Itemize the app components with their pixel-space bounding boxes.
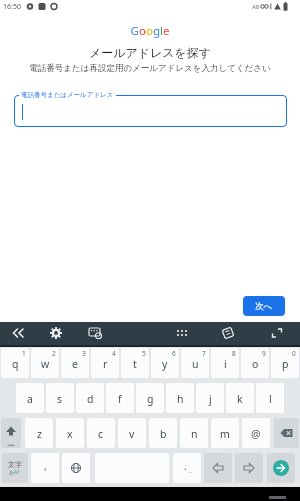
- staticText: j: [209, 392, 212, 406]
- staticText: d: [87, 392, 94, 406]
- staticText: 5: [142, 349, 146, 358]
- button[interactable]: 次へ: [243, 296, 285, 316]
- staticText: b: [160, 427, 167, 441]
- button[interactable]: h: [166, 383, 194, 413]
- button[interactable]: r: [91, 348, 119, 378]
- button[interactable]: @: [242, 418, 270, 448]
- staticText: q: [12, 357, 19, 371]
- button[interactable]: x: [56, 418, 84, 448]
- staticText: 4: [112, 349, 116, 358]
- button[interactable]: f: [106, 383, 134, 413]
- button[interactable]: a: [16, 383, 44, 413]
- staticText: 9: [262, 349, 266, 358]
- button[interactable]: i: [211, 348, 239, 378]
- button[interactable]: ,: [31, 453, 59, 483]
- button[interactable]: [235, 453, 263, 483]
- staticText: メールアドレスを探す: [0, 45, 300, 60]
- button[interactable]: [267, 453, 295, 483]
- button[interactable]: g: [136, 383, 164, 413]
- staticText: 2: [52, 349, 56, 358]
- button[interactable]: e: [61, 348, 89, 378]
- staticText: m: [220, 427, 230, 441]
- staticText: a: [27, 392, 33, 406]
- staticText: @: [251, 427, 261, 441]
- staticText: p: [282, 357, 289, 371]
- staticText: u: [192, 357, 199, 371]
- button[interactable]: [14, 95, 287, 127]
- button[interactable]: l: [256, 383, 284, 413]
- button[interactable]: j: [196, 383, 224, 413]
- staticText: x: [67, 427, 73, 441]
- staticText: i: [224, 357, 227, 371]
- button[interactable]: v: [118, 418, 146, 448]
- button[interactable]: [204, 453, 232, 483]
- staticText: 電話番号またはメールアドレス: [21, 91, 114, 99]
- button[interactable]: d: [76, 383, 104, 413]
- button[interactable]: c: [87, 418, 115, 448]
- button[interactable]: y: [151, 348, 179, 378]
- staticText: 0: [292, 349, 296, 358]
- staticText: f: [118, 392, 122, 406]
- staticText: e: [72, 357, 78, 371]
- staticText: _: [189, 466, 192, 474]
- staticText: ,: [44, 459, 47, 473]
- staticText: 6: [172, 349, 176, 358]
- button[interactable]: n: [180, 418, 208, 448]
- staticText: y: [162, 357, 168, 371]
- staticText: o: [252, 357, 259, 371]
- staticText: あA1: [9, 469, 21, 476]
- staticText: c: [98, 427, 104, 441]
- button[interactable]: [1, 418, 21, 448]
- button[interactable]: o: [241, 348, 269, 378]
- button[interactable]: [274, 418, 299, 448]
- staticText: 文字: [8, 460, 22, 469]
- staticText: n: [191, 427, 198, 441]
- staticText: A8: [252, 3, 260, 11]
- button[interactable]: t: [121, 348, 149, 378]
- staticText: r: [103, 357, 108, 371]
- staticText: s: [57, 392, 63, 406]
- staticText: Google: [0, 23, 300, 39]
- button[interactable]: m: [211, 418, 239, 448]
- staticText: 1: [22, 349, 26, 358]
- button[interactable]: k: [226, 383, 254, 413]
- staticText: 16:50: [3, 2, 21, 12]
- staticText: t: [133, 357, 137, 371]
- staticText: 3: [82, 349, 86, 358]
- button[interactable]: p: [271, 348, 299, 378]
- button[interactable]: [62, 453, 90, 483]
- button[interactable]: .: [173, 453, 201, 483]
- button[interactable]: s: [46, 383, 74, 413]
- staticText: 7: [202, 349, 206, 358]
- button[interactable]: u: [181, 348, 209, 378]
- button[interactable]: z: [25, 418, 53, 448]
- staticText: v: [129, 427, 135, 441]
- button[interactable]: w: [31, 348, 59, 378]
- staticText: k: [237, 392, 243, 406]
- staticText: 8: [232, 349, 236, 358]
- button[interactable]: q: [1, 348, 29, 378]
- button[interactable]: 文字: [2, 453, 28, 483]
- staticText: 電話番号または再設定用のメールアドレスを入力してください: [0, 63, 300, 74]
- staticText: w: [41, 357, 50, 371]
- staticText: l: [269, 392, 272, 406]
- staticText: z: [37, 427, 42, 441]
- staticText: .: [184, 459, 187, 473]
- staticText: 次へ: [255, 301, 273, 312]
- staticText: h: [177, 392, 184, 406]
- button[interactable]: b: [149, 418, 177, 448]
- staticText: g: [147, 392, 154, 406]
